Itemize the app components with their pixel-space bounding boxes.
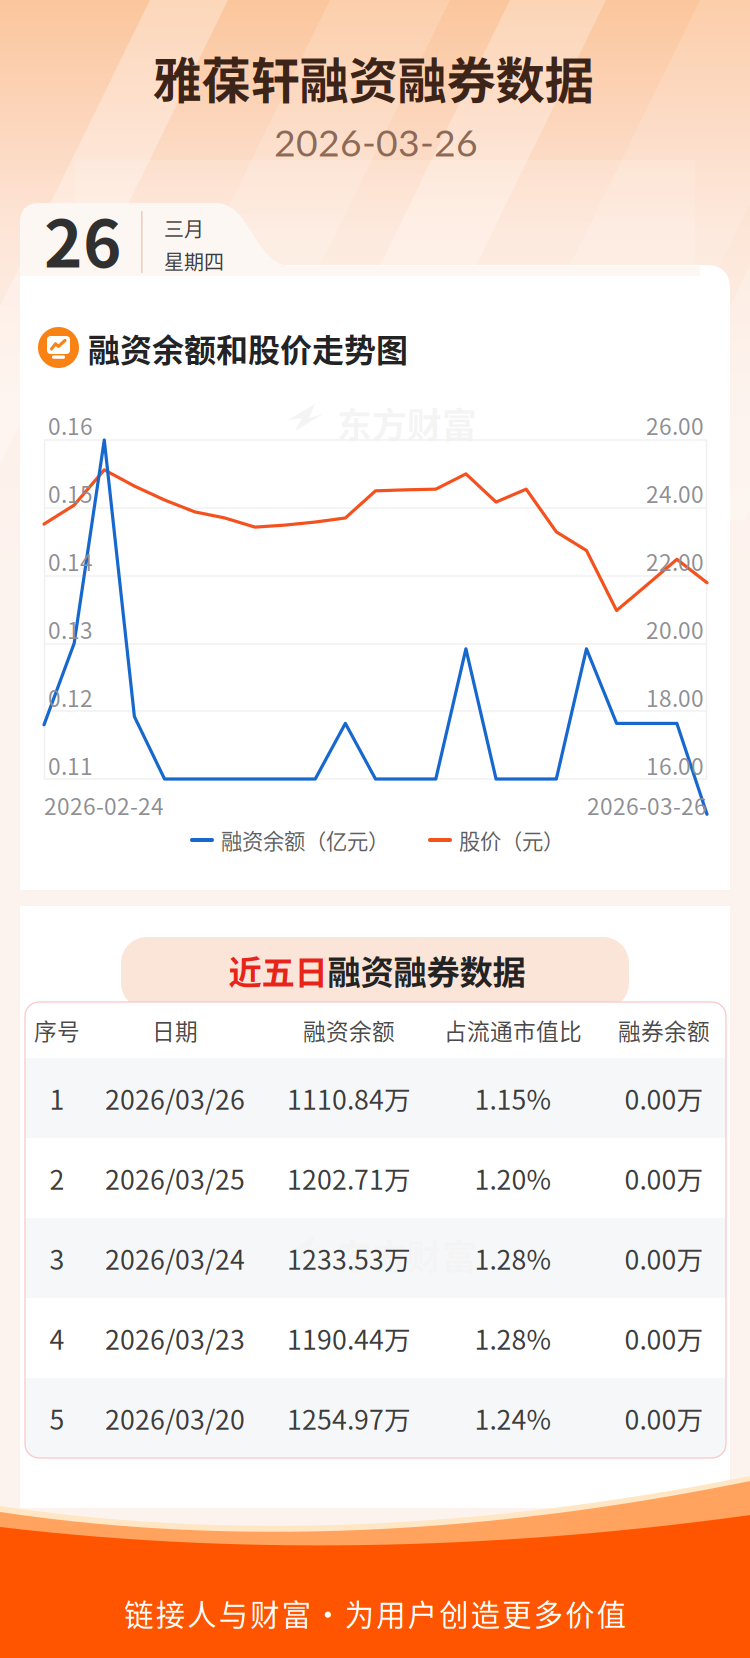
staticText: 1233.53万 [287,1239,411,1277]
staticText: 0.13 [48,613,93,645]
staticText: 融资余额（亿元） [221,825,389,855]
staticText: 4 [49,1319,64,1357]
staticText: 2026/03/20 [105,1399,245,1437]
staticText: 0.00万 [624,1239,703,1277]
staticText: 融资融券数据 [327,946,525,994]
staticText: 0.12 [48,681,93,713]
staticText: 近五日 [228,946,327,994]
staticText: 序号 [34,1014,80,1046]
staticText: 2026/03/23 [105,1319,245,1357]
staticText: 3 [49,1239,64,1277]
staticText: 0.00万 [624,1319,703,1357]
staticText: 融资余额和股价走势图 [88,325,408,371]
staticText: 0.00万 [624,1079,703,1117]
staticText: 5 [49,1399,64,1437]
staticText: 融资余额 [303,1014,395,1046]
staticText: 2026-03-26 [274,120,478,164]
staticText: 24.00 [646,477,704,509]
staticText: 三月 [164,213,204,242]
staticText: 1190.44万 [287,1319,411,1357]
staticText: 融券余额 [618,1014,710,1046]
staticText: 雅葆轩融资融券数据 [152,41,593,113]
staticText: 链接人与财富·为用户创造更多价值 [124,1592,626,1634]
staticText: 0.14 [48,545,93,577]
staticText: 1.20% [474,1159,551,1197]
staticText: 日期 [152,1014,198,1046]
staticText: 1.15% [474,1079,551,1117]
staticText: 1.24% [474,1399,551,1437]
staticText: 16.00 [646,749,704,781]
staticText: 22.00 [646,545,704,577]
staticText: 1254.97万 [287,1399,411,1437]
staticText: 0.11 [48,749,93,781]
staticText: 0.16 [48,409,93,441]
staticText: 1110.84万 [287,1079,411,1117]
staticText: 26 [44,192,122,286]
staticText: 2026-03-26 [587,789,707,821]
staticText: 0.00万 [624,1159,703,1197]
staticText: 1 [49,1079,64,1117]
staticText: 股价（元） [459,825,564,855]
staticText: 2026/03/24 [105,1239,245,1277]
staticText: 1202.71万 [287,1159,411,1197]
staticText: 2 [49,1159,64,1197]
staticText: 2026-02-24 [44,789,164,821]
staticText: 东方财富 [337,1230,477,1280]
staticText: 0.00万 [624,1399,703,1437]
staticText: 2026/03/25 [105,1159,245,1197]
staticText: 2026/03/26 [105,1079,245,1117]
staticText: 东方财富 [337,398,477,448]
staticText: 0.15 [48,477,93,509]
staticText: 26.00 [646,409,704,441]
staticText: 1.28% [474,1239,551,1277]
staticText: 星期四 [164,246,224,275]
staticText: 占流通市值比 [444,1014,582,1046]
staticText: 1.28% [474,1319,551,1357]
staticText: 18.00 [646,681,704,713]
staticText: 20.00 [646,613,704,645]
